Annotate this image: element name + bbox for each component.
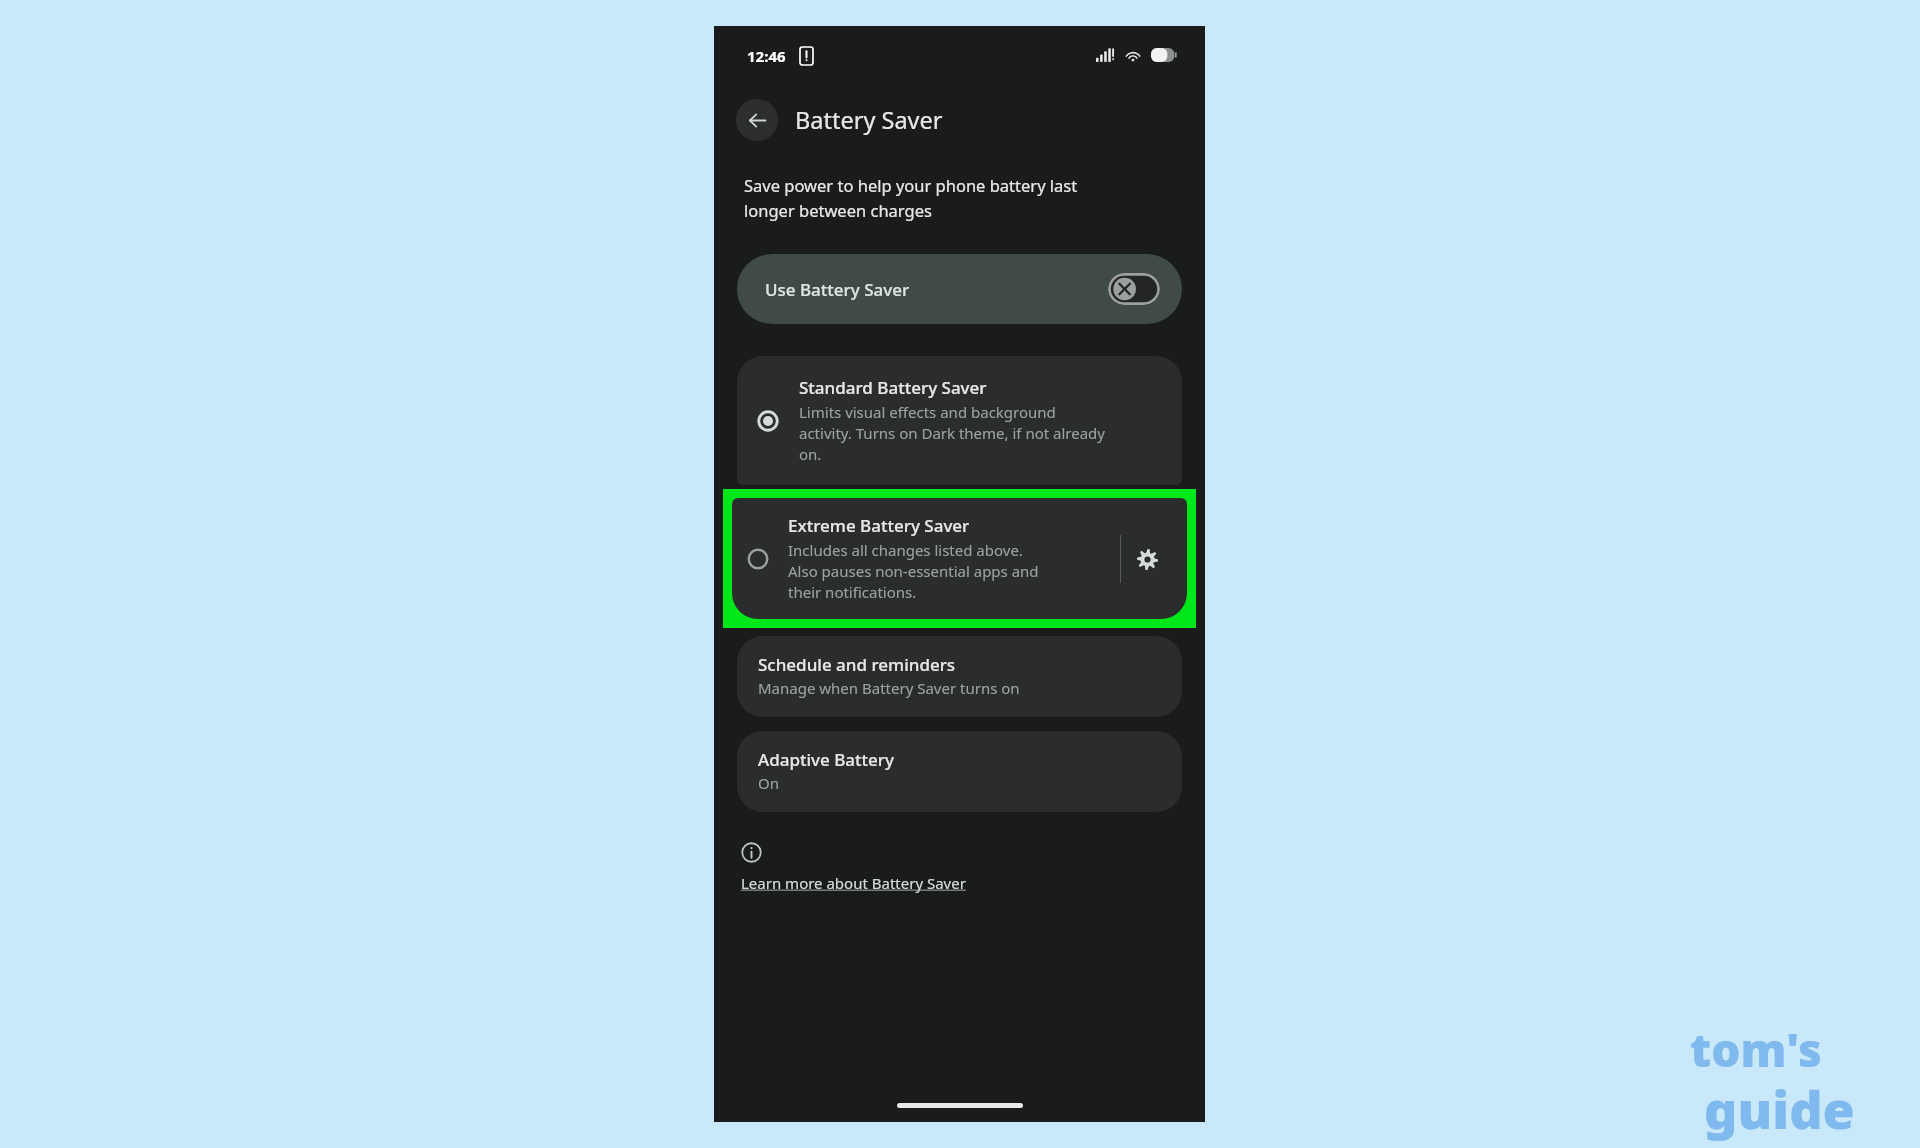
staticText: Schedule and reminders (758, 653, 956, 676)
staticText: Adaptive Battery (758, 748, 894, 771)
button[interactable]: Schedule and reminders (737, 636, 1182, 717)
button[interactable]: Extreme Battery Saver settings (1121, 533, 1173, 585)
staticText: Learn more about Battery Saver (741, 873, 966, 893)
staticText: Extreme Battery Saver (788, 514, 970, 537)
button[interactable]: Back (736, 99, 778, 141)
button[interactable]: Learn more about Battery Saver (741, 842, 976, 893)
staticText: tom's (1690, 1018, 1822, 1081)
staticText: Save power to help your phone battery la… (744, 174, 1078, 222)
staticText: 12:46 (747, 46, 786, 66)
staticText: Includes all changes listed above. Also … (788, 540, 1039, 603)
staticText: On (758, 773, 779, 793)
button[interactable]: Use Battery Saver toggle (1108, 273, 1160, 305)
staticText: guide (1704, 1073, 1855, 1144)
staticText: Limits visual effects and background act… (799, 402, 1105, 465)
staticText: Use Battery Saver (765, 278, 910, 301)
button[interactable]: Standard Battery Saver (737, 356, 1182, 485)
button[interactable]: Adaptive Battery (737, 731, 1182, 812)
staticText: Standard Battery Saver (799, 376, 987, 399)
staticText: Battery Saver (795, 104, 943, 136)
button[interactable]: Use Battery Saver (737, 254, 1182, 324)
button[interactable]: Extreme Battery Saver (732, 498, 1187, 619)
staticText: Manage when Battery Saver turns on (758, 678, 1020, 698)
